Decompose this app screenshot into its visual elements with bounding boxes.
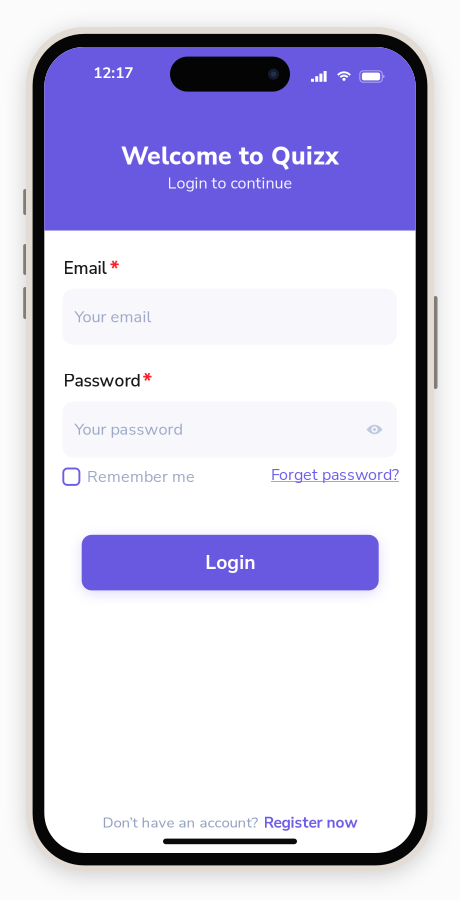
staticText: Your password <box>75 418 183 441</box>
staticText: 12:17 <box>93 63 133 84</box>
button[interactable]: Forget password? <box>265 458 405 492</box>
staticText: Forget password? <box>271 464 399 486</box>
staticText: * <box>142 367 152 396</box>
staticText: Login to continue <box>167 172 292 194</box>
staticText: Login <box>205 549 255 576</box>
staticText: Your email <box>75 306 152 328</box>
staticText: Register now <box>263 812 357 833</box>
button[interactable]: Don’t have an account? <box>44 806 416 839</box>
button[interactable]: Remember me <box>61 461 197 493</box>
staticText: Remember me <box>87 466 195 488</box>
staticText: Password <box>63 369 140 393</box>
staticText: * <box>110 255 120 284</box>
button[interactable]: Login <box>82 535 379 590</box>
staticText: Email <box>63 257 106 280</box>
staticText: Welcome to Quizx <box>121 139 339 173</box>
button[interactable]: Show password <box>353 406 395 452</box>
staticText: Don’t have an account? <box>102 813 258 833</box>
